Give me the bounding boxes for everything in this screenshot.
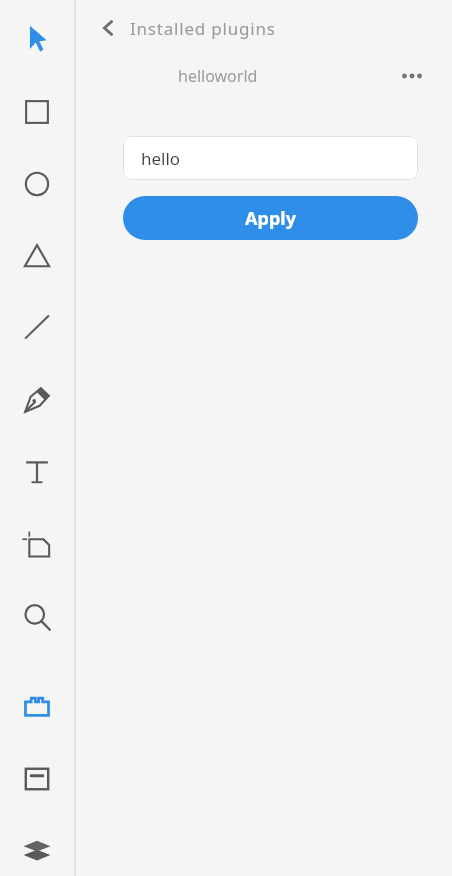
button[interactable]: Select [21,22,53,54]
button[interactable]: Pen [21,384,53,416]
button[interactable]: Rectangle [21,96,53,128]
button[interactable]: Line [21,311,53,343]
button[interactable]: Add frame [21,529,53,561]
staticText: Apply [245,206,296,231]
button[interactable]: Polygon [21,240,53,272]
button[interactable]: Text [21,456,53,488]
button[interactable]: Apply [123,196,418,240]
button[interactable]: Back [76,0,452,56]
button[interactable]: Layers [21,834,53,866]
button[interactable]: Plugins [21,691,53,723]
button[interactable]: Search [21,601,53,633]
staticText: hello [141,147,181,170]
button[interactable]: Component [21,763,53,795]
button[interactable]: hello [123,136,418,180]
button[interactable]: Ellipse [21,168,53,200]
other: Back [98,18,118,38]
button[interactable]: More options [396,60,428,92]
staticText: Installed plugins [130,17,276,40]
staticText: helloworld [178,65,258,87]
